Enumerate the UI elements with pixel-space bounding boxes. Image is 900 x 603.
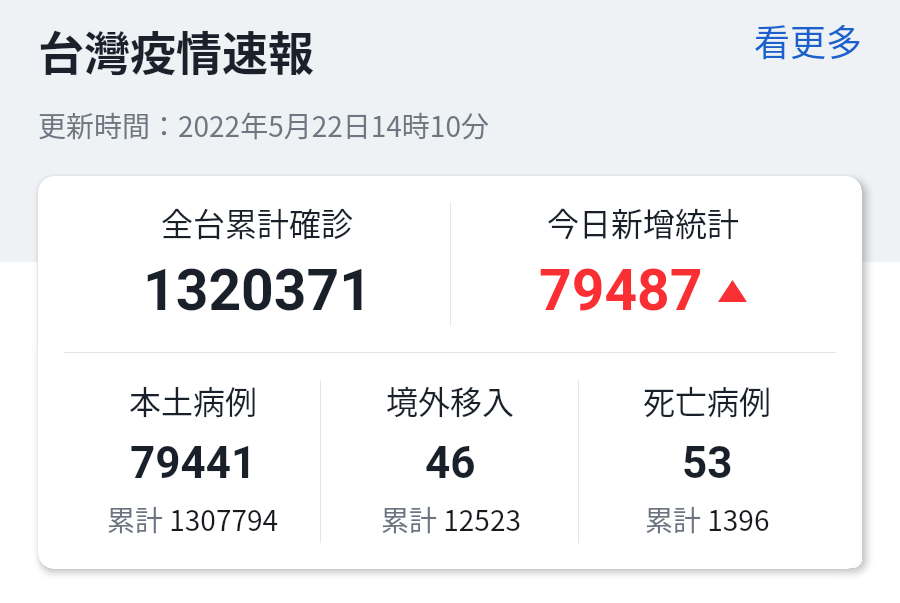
- other: Increase: [718, 280, 747, 302]
- staticText: 台灣疫情速報: [38, 17, 314, 84]
- button[interactable]: 全台累計確診: [64, 176, 450, 352]
- staticText: 死亡病例: [643, 377, 772, 423]
- staticText: 本土病例: [129, 377, 258, 423]
- staticText: 全台累計確診: [161, 199, 354, 245]
- staticText: 今日新增統計: [547, 199, 740, 245]
- staticText: 46: [425, 437, 476, 489]
- button[interactable]: 看更多: [754, 14, 863, 66]
- staticText: 境外移入: [386, 377, 515, 423]
- staticText: 累計 1396: [645, 499, 770, 540]
- staticText: 53: [682, 437, 733, 489]
- button[interactable]: 境外移入: [322, 353, 579, 569]
- staticText: 更新時間：2022年5月22日14時10分: [38, 105, 489, 146]
- staticText: 79487: [539, 257, 703, 324]
- staticText: 累計 12523: [381, 499, 521, 540]
- staticText: 累計 1307794: [107, 499, 279, 540]
- staticText: 79441: [130, 437, 257, 489]
- button[interactable]: 本土病例: [64, 353, 322, 569]
- staticText: 看更多: [754, 14, 863, 66]
- button[interactable]: 死亡病例: [579, 353, 836, 569]
- staticText: 1320371: [143, 257, 372, 324]
- button[interactable]: 今日新增統計: [450, 176, 836, 352]
